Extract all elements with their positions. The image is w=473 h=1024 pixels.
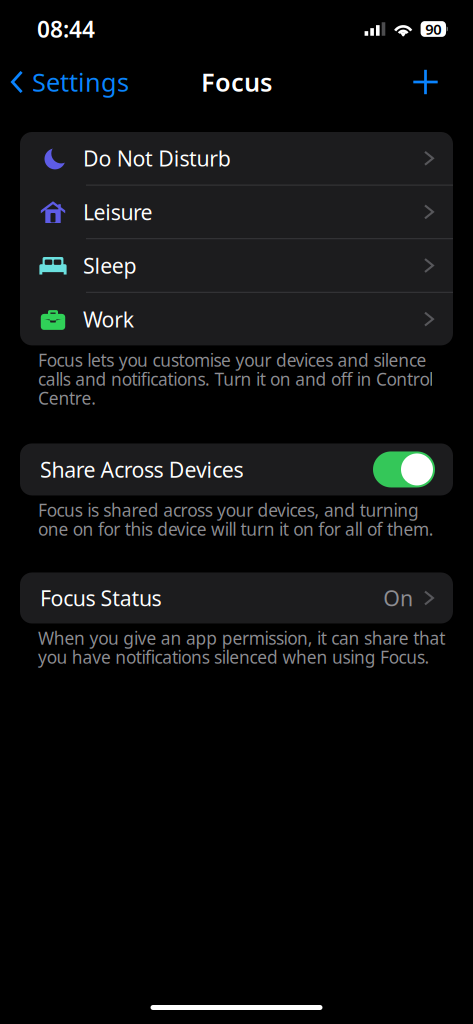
button[interactable]: Leisure xyxy=(20,186,453,238)
button[interactable]: Work xyxy=(20,293,453,345)
staticText: Focus is shared across your devices, and… xyxy=(38,498,434,540)
staticText: Work xyxy=(83,305,134,333)
staticText: Leisure xyxy=(83,198,153,226)
button[interactable]: Share Across Devices xyxy=(373,451,435,487)
button[interactable]: Focus Status xyxy=(0,572,473,623)
button[interactable]: Add Focus xyxy=(412,60,473,103)
staticText: 08:44 xyxy=(37,14,95,44)
staticText: Focus lets you customise your devices an… xyxy=(38,348,433,409)
staticText: When you give an app permission, it can … xyxy=(38,626,445,668)
staticText: Share Across Devices xyxy=(40,455,243,484)
staticText: Sleep xyxy=(83,251,136,280)
button[interactable]: Do Not Disturb xyxy=(20,132,453,185)
button[interactable]: Settings xyxy=(0,57,129,107)
staticText: On xyxy=(383,584,413,612)
staticText: Do Not Disturb xyxy=(83,144,231,172)
button[interactable]: Sleep xyxy=(20,239,453,292)
staticText: 90 xyxy=(425,19,441,39)
staticText: Focus Status xyxy=(40,584,162,612)
staticText: Focus xyxy=(201,65,272,99)
staticText: Settings xyxy=(32,65,129,99)
